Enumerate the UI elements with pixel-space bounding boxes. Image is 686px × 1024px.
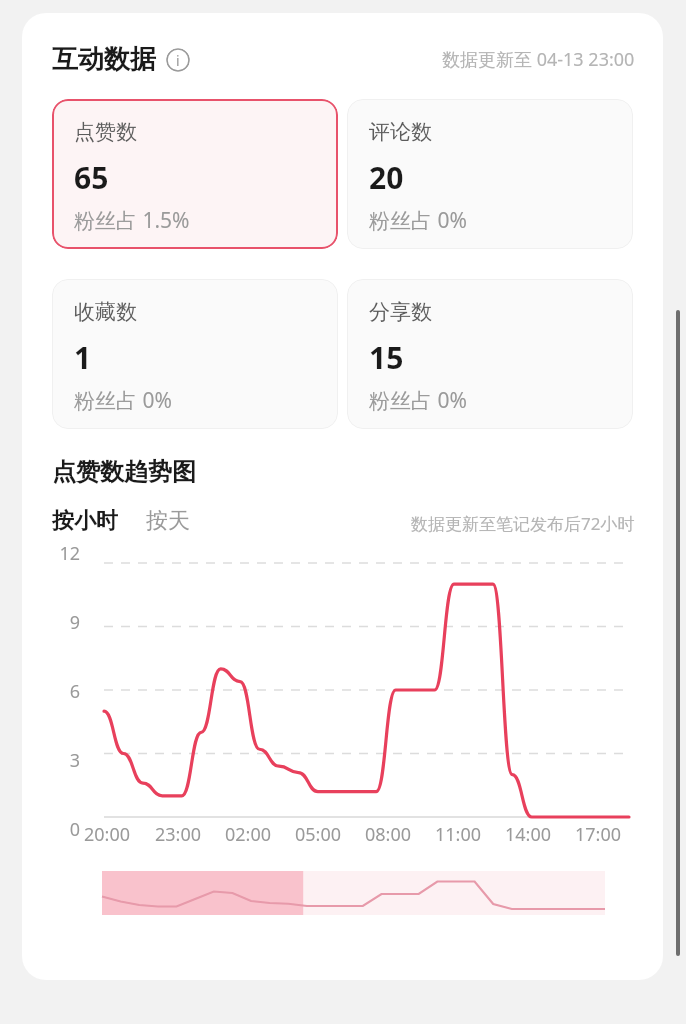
staticText: 05:00 <box>295 822 342 847</box>
staticText: 按天 <box>146 507 190 535</box>
button[interactable]: Info <box>166 48 190 72</box>
button[interactable]: 分享数 <box>347 279 633 429</box>
staticText: 互动数据 <box>52 43 156 76</box>
staticText: 20 <box>369 157 404 198</box>
staticText: 9 <box>69 610 80 635</box>
staticText: 收藏数 <box>74 299 137 325</box>
button[interactable]: 评论数 <box>347 99 633 249</box>
staticText: 11:00 <box>435 822 482 847</box>
staticText: 粉丝占 0% <box>369 386 467 415</box>
staticText: 14:00 <box>505 822 552 847</box>
button[interactable]: 按天 <box>146 507 190 535</box>
staticText: 08:00 <box>365 822 412 847</box>
staticText: 6 <box>69 679 80 704</box>
button[interactable]: 点赞数 <box>52 99 338 249</box>
staticText: 粉丝占 0% <box>74 386 172 415</box>
staticText: 65 <box>74 157 109 198</box>
staticText: 分享数 <box>369 299 432 325</box>
staticText: 点赞数 <box>74 119 137 145</box>
staticText: 3 <box>69 748 80 773</box>
staticText: 20:00 <box>84 822 131 847</box>
button[interactable]: 按小时 <box>52 507 118 535</box>
staticText: 15 <box>369 337 404 378</box>
staticText: 1 <box>74 337 92 378</box>
button[interactable]: 收藏数 <box>52 279 338 429</box>
staticText: 点赞数趋势图 <box>52 457 196 487</box>
staticText: 0 <box>69 817 80 841</box>
staticText: i <box>176 51 180 70</box>
staticText: 粉丝占 0% <box>369 206 467 235</box>
staticText: 数据更新至 04-13 23:00 <box>442 47 635 72</box>
staticText: 12 <box>59 541 80 566</box>
staticText: 数据更新至笔记发布后72小时 <box>411 512 635 535</box>
staticText: 23:00 <box>155 822 202 847</box>
staticText: 17:00 <box>575 822 622 847</box>
staticText: 按小时 <box>52 507 118 535</box>
button[interactable]: Chart range selector <box>102 871 605 915</box>
staticText: 评论数 <box>369 119 432 145</box>
staticText: 粉丝占 1.5% <box>74 206 190 235</box>
staticText: 02:00 <box>225 822 272 847</box>
